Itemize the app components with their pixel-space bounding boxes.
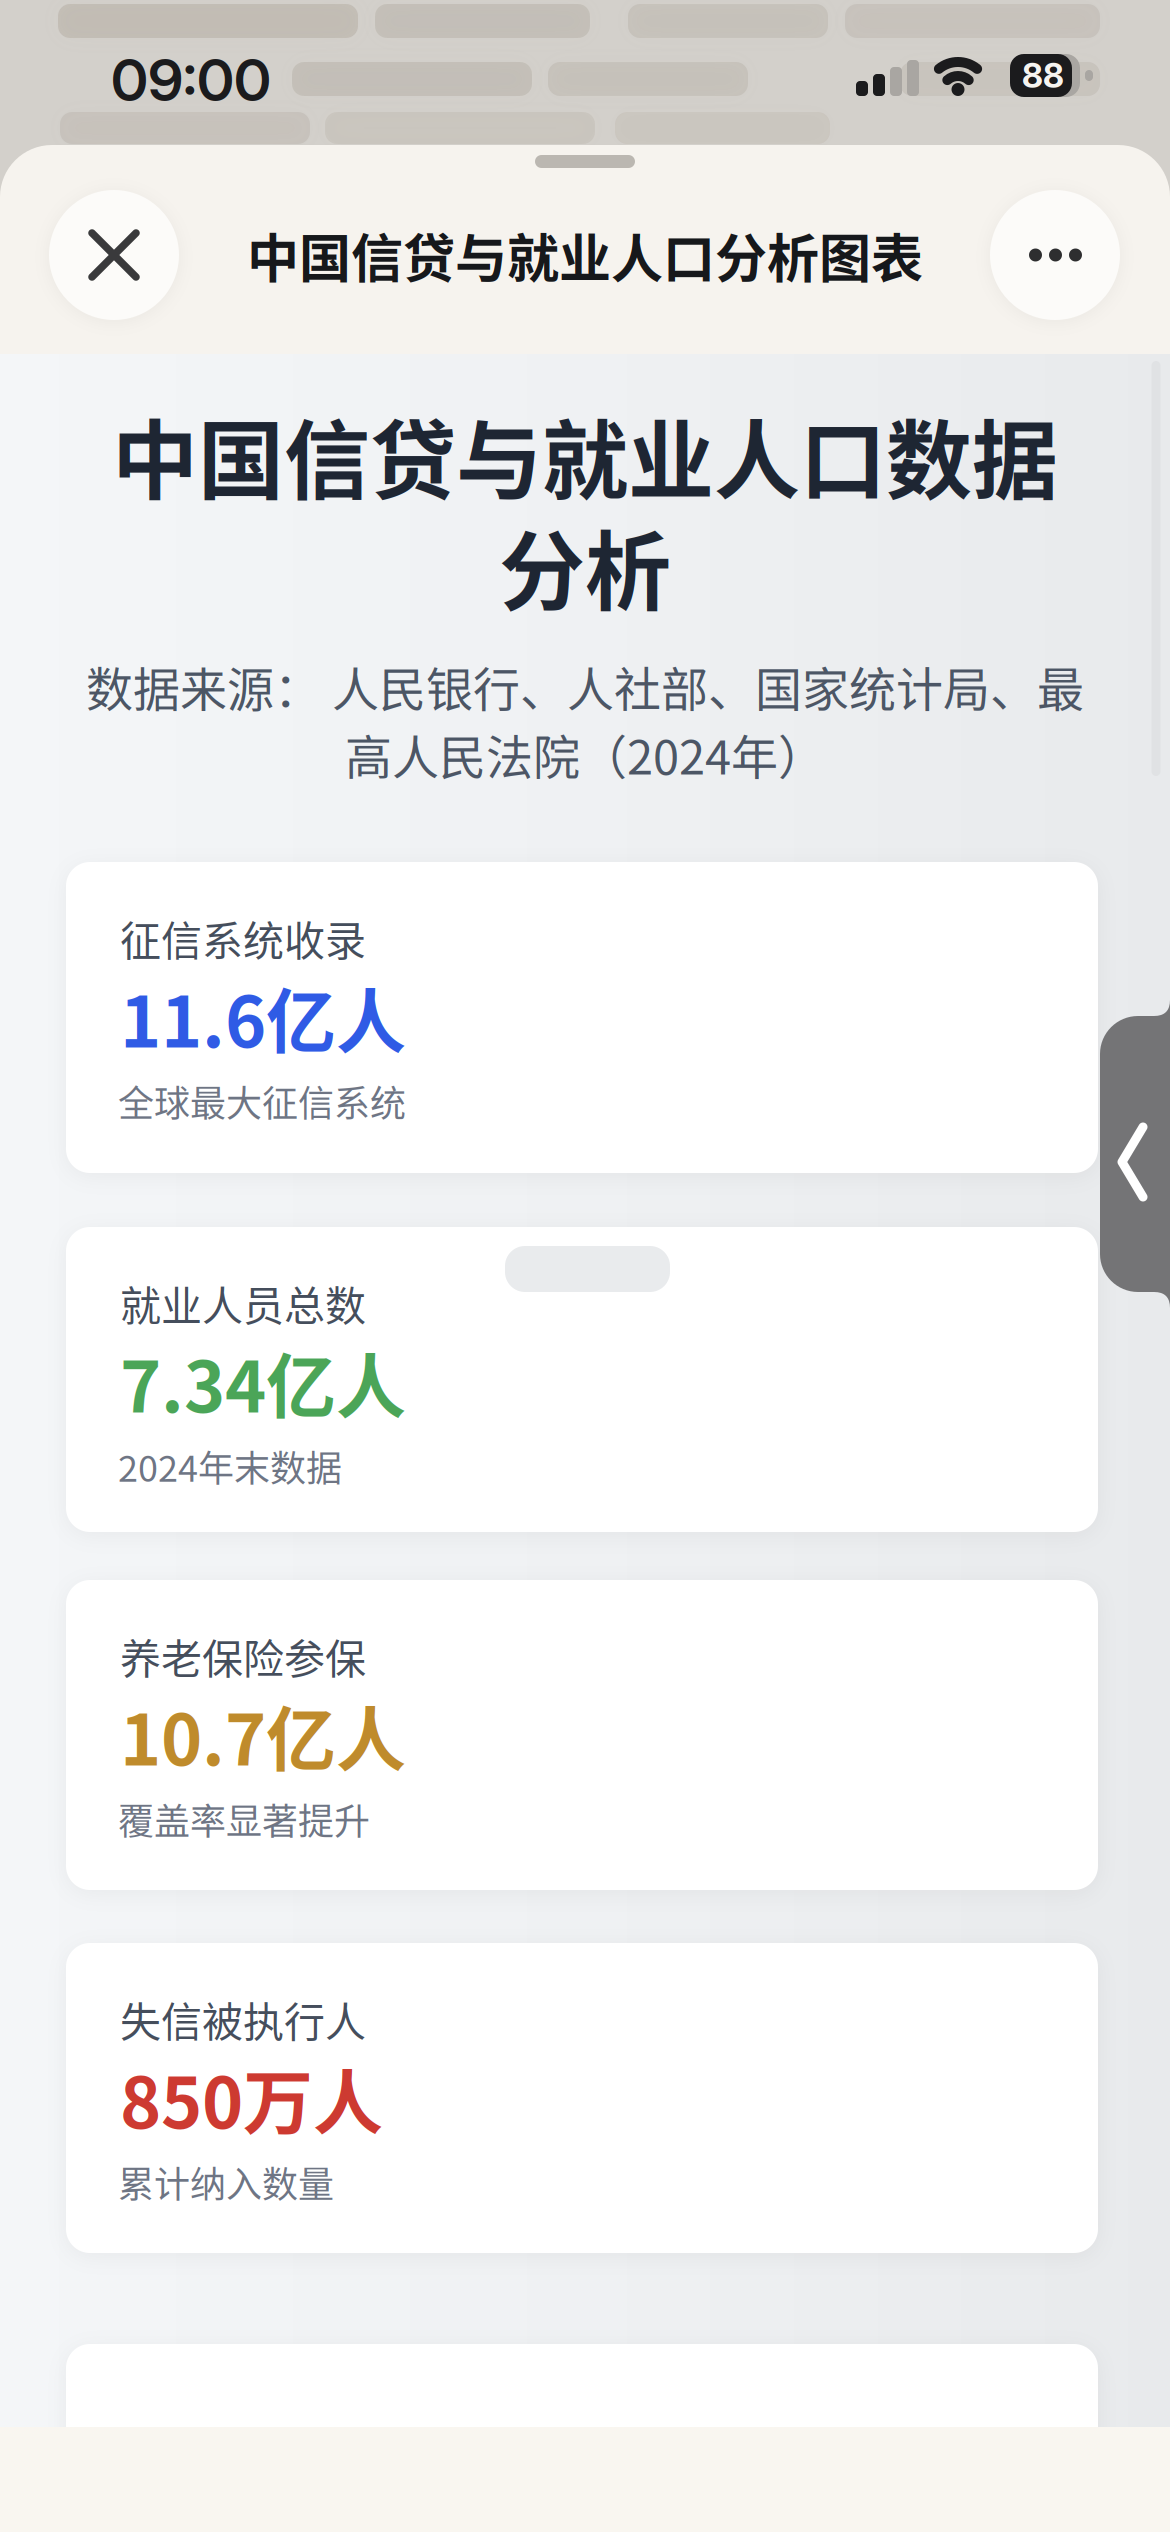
staticText: 88 [1022, 55, 1064, 96]
staticText: 中国信贷与就业人口数据 [112, 393, 1058, 517]
staticText: 失信被执行人 [120, 1989, 366, 2049]
staticText: 征信系统收录 [120, 908, 366, 968]
staticText: 11.6亿人 [120, 966, 406, 1068]
staticText: 高人民法院（2024年） [345, 720, 825, 788]
staticText: 就业人员总数 [120, 1273, 366, 1333]
staticText: 数据来源： 人民银行、人社部、国家统计局、最 [86, 652, 1084, 720]
staticText: 累计纳入数量 [118, 2156, 334, 2208]
staticText: 覆盖率显著提升 [118, 1793, 370, 1845]
staticText: 养老保险参保 [120, 1626, 366, 1686]
staticText: 分析 [499, 504, 671, 628]
staticText: 7.34亿人 [120, 1331, 406, 1433]
staticText: 09:00 [111, 45, 271, 115]
staticText: 全球最大征信系统 [118, 1075, 406, 1127]
staticText: 2024年末数据 [118, 1440, 342, 1492]
staticText: 850万人 [120, 2047, 383, 2149]
staticText: 10.7亿人 [120, 1684, 406, 1786]
staticText: 中国信贷与就业人口分析图表 [247, 217, 923, 293]
